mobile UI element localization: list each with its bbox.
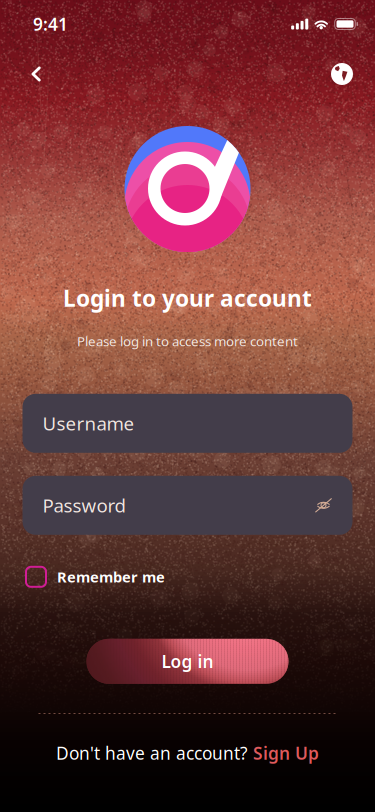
- button[interactable]: Log in: [86, 639, 288, 684]
- button[interactable]: Change language: [320, 52, 364, 96]
- staticText: Username: [42, 411, 134, 436]
- button[interactable]: Show password: [311, 493, 335, 517]
- staticText: Remember me: [57, 567, 165, 587]
- staticText: Please log in to access more content: [77, 332, 298, 350]
- staticText: 9:41: [33, 12, 68, 35]
- staticText: Login to your account: [63, 283, 312, 313]
- button[interactable]: Back: [14, 52, 58, 96]
- staticText: Sign Up: [253, 741, 319, 764]
- staticText: Log in: [161, 650, 213, 673]
- button[interactable]: Don't have an account?: [56, 742, 319, 764]
- button[interactable]: Remember me: [26, 566, 356, 588]
- staticText: Password: [42, 493, 125, 518]
- staticText: Don't have an account?: [56, 741, 253, 764]
